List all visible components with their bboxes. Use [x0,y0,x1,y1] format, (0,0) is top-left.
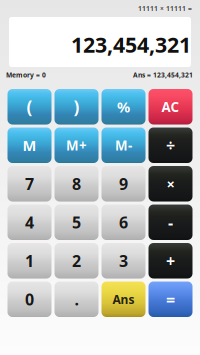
button[interactable]: 9 [101,166,145,201]
button[interactable]: M [7,127,51,163]
staticText: 8 [72,173,81,194]
staticText: 0 [25,289,34,310]
staticText: % [117,97,130,116]
staticText: ÷ [166,135,175,156]
staticText: - [168,212,173,233]
button[interactable]: + [148,243,192,278]
staticText: × [166,174,174,193]
button[interactable]: - [148,204,192,240]
staticText: 2 [72,250,81,271]
button[interactable]: 6 [101,204,145,240]
button[interactable]: ÷ [148,127,192,163]
button[interactable]: % [101,89,145,124]
button[interactable]: 2 [54,243,98,278]
button[interactable]: 4 [7,204,51,240]
staticText: M+ [66,136,87,154]
button[interactable]: 5 [54,204,98,240]
staticText: + [166,250,175,271]
staticText: 6 [119,212,128,233]
staticText: M [22,135,36,155]
button[interactable]: 1 [7,243,51,278]
button[interactable]: ( [7,89,51,124]
button[interactable]: M- [101,127,145,163]
button[interactable]: ) [54,89,98,124]
staticText: 11111 × 11111 = [138,4,192,13]
staticText: Ans [112,291,134,307]
button[interactable]: AC [148,89,192,124]
staticText: . [74,289,78,310]
button[interactable]: = [148,281,192,317]
button[interactable]: 3 [101,243,145,278]
button[interactable]: 7 [7,166,51,201]
staticText: 123,454,321 [71,30,191,59]
staticText: Memory = 0 [6,71,46,79]
staticText: 7 [25,173,34,194]
staticText: = [166,289,175,310]
button[interactable]: 8 [54,166,98,201]
button[interactable]: 0 [7,281,51,317]
button[interactable]: × [148,166,192,201]
staticText: 5 [72,212,81,233]
button[interactable]: M+ [54,127,98,163]
staticText: AC [161,98,179,116]
staticText: 4 [25,212,34,233]
staticText: ) [73,95,79,118]
staticText: 9 [119,173,128,194]
staticText: 1 [25,250,34,271]
staticText: ( [26,95,32,118]
button[interactable]: Ans [101,281,145,317]
staticText: M- [115,136,132,154]
staticText: 3 [119,250,128,271]
button[interactable]: . [54,281,98,317]
staticText: Ans = 123,454,321 [133,71,193,79]
